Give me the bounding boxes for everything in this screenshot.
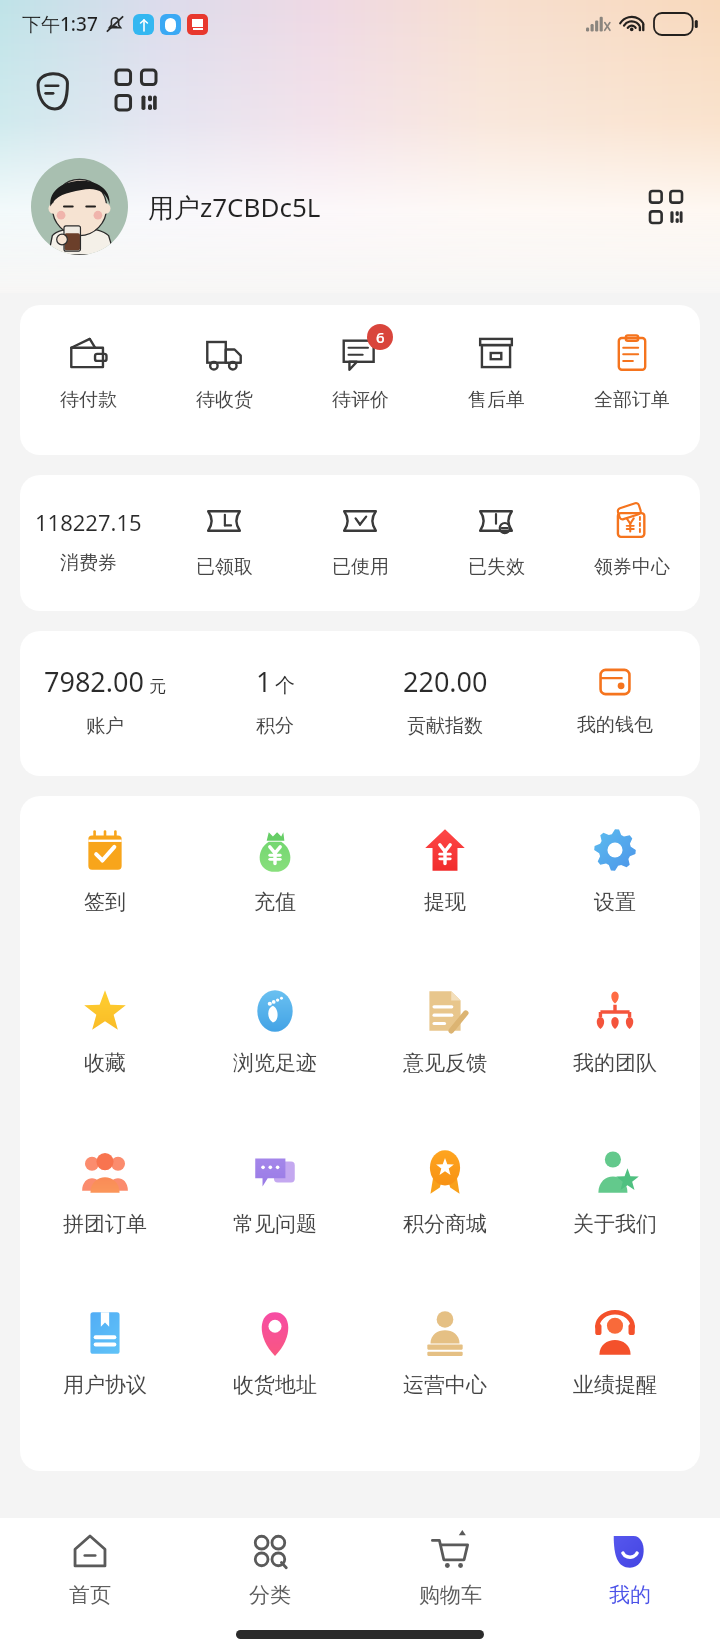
- button[interactable]: 6: [292, 331, 428, 412]
- staticText: 售后单: [468, 388, 525, 412]
- button[interactable]: 购物车: [360, 1518, 540, 1618]
- staticText: 118227.15: [35, 507, 142, 537]
- staticText: 首页: [69, 1582, 111, 1608]
- staticText: 220.00: [403, 663, 488, 700]
- staticText: 已领取: [196, 555, 253, 579]
- staticText: 拼团订单: [63, 1211, 147, 1237]
- button[interactable]: 待付款: [20, 331, 156, 412]
- staticText: 购物车: [419, 1582, 482, 1608]
- button[interactable]: Messages: [26, 62, 82, 118]
- button[interactable]: 售后单: [428, 331, 564, 412]
- button[interactable]: 收货地址: [190, 1307, 360, 1468]
- staticText: 下午1:37: [22, 11, 98, 37]
- button[interactable]: 用户协议: [20, 1307, 190, 1468]
- staticText: 贡献指数: [407, 714, 483, 738]
- button[interactable]: My QR code: [643, 184, 689, 230]
- staticText: 收藏: [84, 1050, 126, 1076]
- button[interactable]: 充值: [190, 824, 360, 985]
- staticText: 1: [256, 663, 272, 700]
- staticText: 积分商城: [403, 1211, 487, 1237]
- button[interactable]: 我的钱包: [530, 663, 700, 737]
- staticText: 待付款: [60, 388, 117, 412]
- button[interactable]: 已使用: [292, 499, 428, 579]
- button[interactable]: 已领取: [156, 499, 292, 579]
- staticText: 全部订单: [594, 388, 670, 412]
- staticText: 收货地址: [233, 1372, 317, 1398]
- staticText: 充值: [254, 889, 296, 915]
- button[interactable]: 已失效: [428, 499, 564, 579]
- staticText: 账户: [86, 714, 124, 738]
- button[interactable]: 关于我们: [530, 1146, 700, 1307]
- button[interactable]: 7982.00: [20, 663, 190, 738]
- staticText: 7982.00: [44, 663, 144, 700]
- staticText: 我的团队: [573, 1050, 657, 1076]
- staticText: 待收货: [196, 388, 253, 412]
- staticText: 签到: [84, 889, 126, 915]
- staticText: 设置: [594, 889, 636, 915]
- button[interactable]: 运营中心: [360, 1307, 530, 1468]
- staticText: 消费券: [60, 551, 117, 575]
- button[interactable]: 拼团订单: [20, 1146, 190, 1307]
- button[interactable]: 浏览足迹: [190, 985, 360, 1146]
- button[interactable]: 我的: [540, 1518, 720, 1618]
- staticText: 我的: [609, 1582, 651, 1608]
- staticText: 业绩提醒: [573, 1372, 657, 1398]
- staticText: 用户协议: [63, 1372, 147, 1398]
- staticText: 常见问题: [233, 1211, 317, 1237]
- button[interactable]: 签到: [20, 824, 190, 985]
- staticText: 元: [149, 676, 166, 697]
- button[interactable]: 待收货: [156, 331, 292, 412]
- button[interactable]: 分类: [180, 1518, 360, 1618]
- staticText: 浏览足迹: [233, 1050, 317, 1076]
- button[interactable]: 1: [190, 663, 360, 738]
- staticText: 个: [275, 673, 295, 698]
- button[interactable]: 提现: [360, 824, 530, 985]
- button[interactable]: 设置: [530, 824, 700, 985]
- staticText: 分类: [249, 1582, 291, 1608]
- button[interactable]: 业绩提醒: [530, 1307, 700, 1468]
- button[interactable]: 首页: [0, 1518, 180, 1618]
- staticText: 我的钱包: [577, 713, 653, 737]
- staticText: 关于我们: [573, 1211, 657, 1237]
- staticText: 已使用: [332, 555, 389, 579]
- staticText: 待评价: [332, 388, 389, 412]
- button[interactable]: 收藏: [20, 985, 190, 1146]
- button[interactable]: 领券中心: [564, 499, 700, 579]
- button[interactable]: Scan QR code: [108, 62, 164, 118]
- button[interactable]: 积分商城: [360, 1146, 530, 1307]
- staticText: 运营中心: [403, 1372, 487, 1398]
- staticText: 积分: [256, 714, 294, 738]
- button[interactable]: 我的团队: [530, 985, 700, 1146]
- staticText: 已失效: [468, 555, 525, 579]
- button[interactable]: 用户z7CBDc5L: [31, 158, 689, 255]
- button[interactable]: 常见问题: [190, 1146, 360, 1307]
- staticText: 6: [376, 327, 385, 347]
- button[interactable]: 全部订单: [564, 331, 700, 412]
- button[interactable]: 意见反馈: [360, 985, 530, 1146]
- staticText: 用户z7CBDc5L: [148, 189, 321, 225]
- button[interactable]: 220.00: [360, 663, 530, 738]
- staticText: 提现: [424, 889, 466, 915]
- staticText: 意见反馈: [403, 1050, 487, 1076]
- button[interactable]: 118227.15: [20, 499, 156, 575]
- staticText: 领券中心: [594, 555, 670, 579]
